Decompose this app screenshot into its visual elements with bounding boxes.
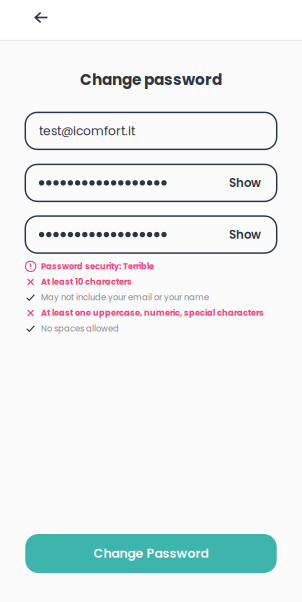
staticText: Show [229, 226, 261, 243]
button[interactable]: Back [23, 0, 59, 41]
staticText: At least one uppercase, numeric, special… [41, 307, 264, 319]
staticText: Password security: Terrible [41, 261, 154, 272]
staticText: May not include your email or your name [41, 292, 209, 303]
button[interactable]: Show [229, 226, 261, 243]
staticText: Change Password [93, 545, 208, 562]
staticText: Show [229, 175, 261, 191]
staticText: At least 10 characters [41, 276, 132, 288]
button[interactable]: Change Password [25, 534, 277, 573]
staticText: test@icomfort.it [39, 122, 135, 139]
button[interactable]: Show [229, 175, 261, 191]
staticText: Change password [80, 69, 222, 90]
staticText: No spaces allowed [41, 323, 119, 334]
